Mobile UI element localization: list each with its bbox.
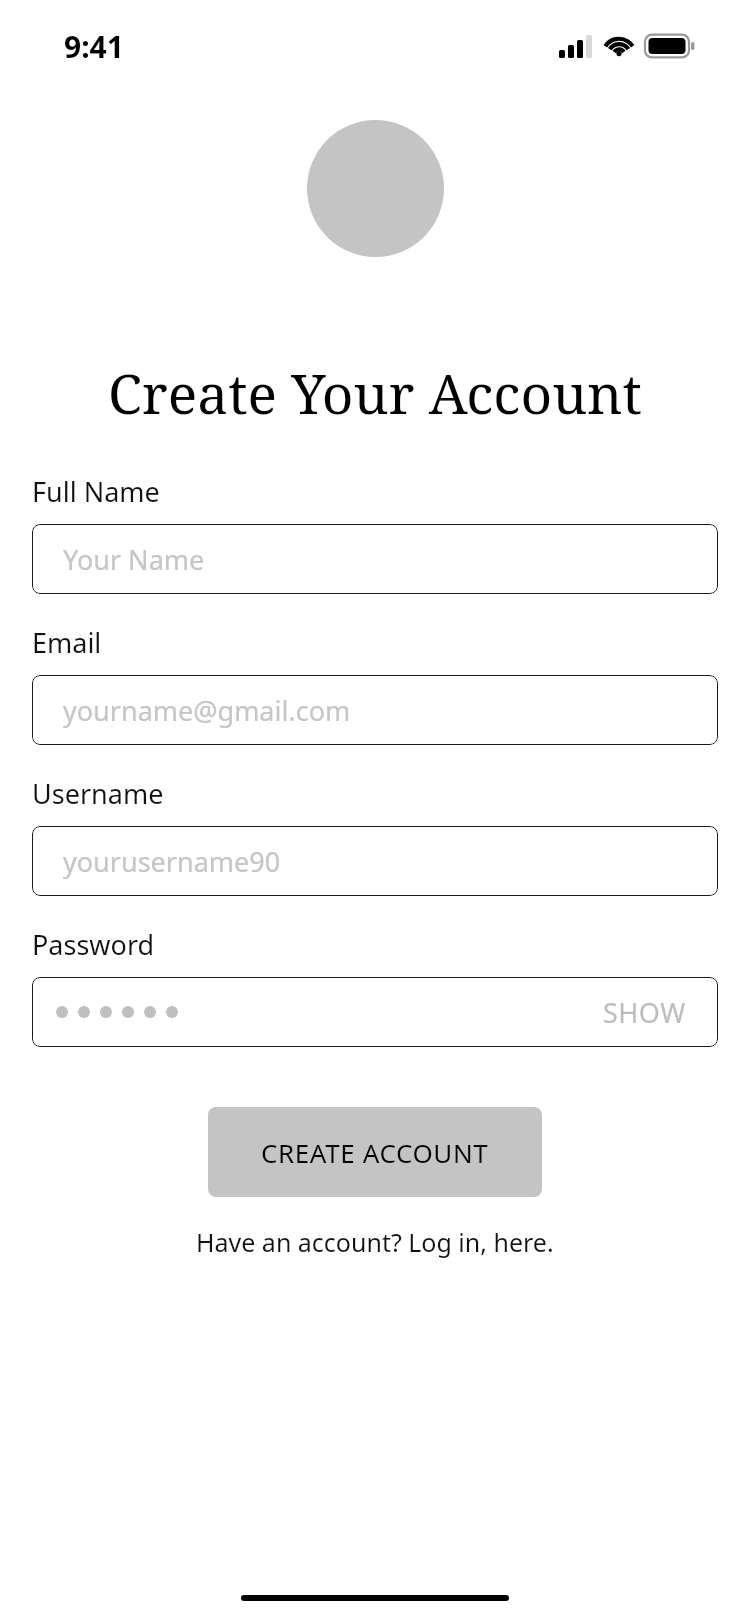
- staticText: SHOW: [603, 994, 686, 1031]
- staticText: Have an account? Log in, here.: [196, 1225, 554, 1259]
- staticText: CREATE ACCOUNT: [261, 1135, 489, 1170]
- button[interactable]: yourname@gmail.com: [32, 675, 718, 745]
- staticText: Your Name: [63, 541, 205, 578]
- staticText: Password: [32, 926, 155, 963]
- button[interactable]: Have an account? Log in, here.: [186, 1217, 564, 1267]
- button[interactable]: SHOW: [599, 988, 690, 1037]
- staticText: Username: [32, 775, 164, 812]
- staticText: Create Your Account: [0, 355, 750, 430]
- staticText: Email: [32, 624, 102, 661]
- button[interactable]: yourusername90: [32, 826, 718, 896]
- staticText: yourusername90: [63, 843, 281, 880]
- staticText: Full Name: [32, 473, 160, 510]
- button[interactable]: SHOW: [32, 977, 718, 1047]
- staticText: 9:41: [64, 26, 124, 67]
- button[interactable]: CREATE ACCOUNT: [208, 1107, 542, 1197]
- staticText: yourname@gmail.com: [63, 692, 351, 729]
- button[interactable]: Your Name: [32, 524, 718, 594]
